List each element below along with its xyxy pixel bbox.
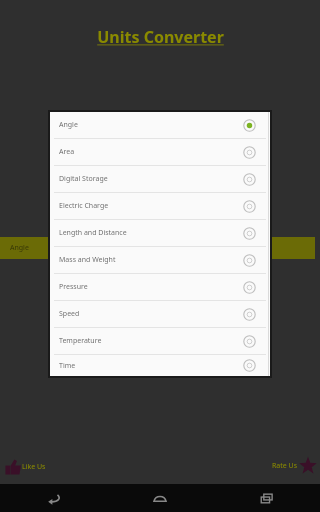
staticText: Digital Storage [59,174,243,184]
button[interactable]: Angle [50,112,270,138]
other: Rate Us [298,456,318,476]
staticText: Area [59,147,243,157]
staticText: Speed [59,309,243,319]
button[interactable]: Speed [50,301,270,327]
button[interactable]: Digital Storage [50,166,270,192]
button[interactable]: Area [50,139,270,165]
button[interactable]: Temperature [50,328,270,354]
button[interactable]: Length and Distance [50,220,270,246]
button[interactable]: Time [50,355,270,376]
button[interactable]: Rate Us [272,456,318,476]
staticText: Angle [10,243,29,253]
staticText: Length and Distance [59,228,243,238]
staticText: Temperature [59,336,243,346]
button[interactable]: Electric Charge [50,193,270,219]
button[interactable]: Back [0,484,106,512]
staticText: Like Us [22,462,46,472]
button[interactable]: Angle [0,237,315,259]
staticText: Pressure [59,282,243,292]
staticText: Time [59,361,243,371]
other: Like Us [4,458,22,476]
staticText: Units Converter [97,26,224,48]
button[interactable]: Units Converter [0,26,320,48]
staticText: Electric Charge [59,201,243,211]
button[interactable]: Like Us [4,458,46,476]
button[interactable]: Recent apps [213,484,320,512]
staticText: Mass and Weight [59,255,243,265]
button[interactable]: Home [106,484,213,512]
staticText: Angle [59,120,243,130]
staticText: Rate Us [272,461,298,471]
button[interactable]: Mass and Weight [50,247,270,273]
button[interactable]: Pressure [50,274,270,300]
